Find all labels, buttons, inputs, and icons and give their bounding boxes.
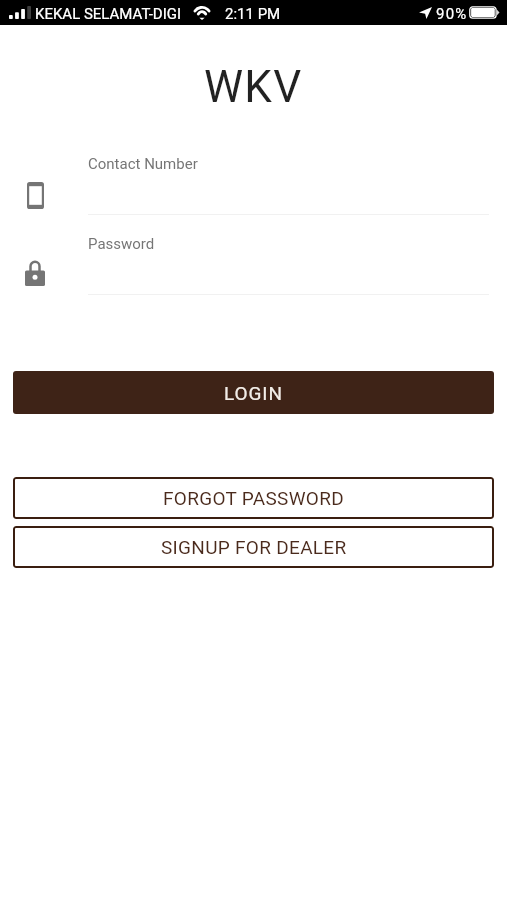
other: Password	[25, 259, 45, 287]
button[interactable]: Contact Number	[88, 141, 489, 215]
staticText: Password	[88, 235, 155, 253]
button[interactable]: LOGIN	[13, 371, 494, 414]
staticText: FORGOT PASSWORD	[163, 487, 344, 509]
button[interactable]: Password	[88, 221, 489, 295]
button[interactable]: FORGOT PASSWORD	[13, 477, 494, 519]
staticText: 90%	[436, 5, 468, 23]
button[interactable]: SIGNUP FOR DEALER	[13, 526, 494, 568]
staticText: LOGIN	[224, 382, 283, 404]
staticText: WKV	[204, 61, 303, 113]
staticText: 2:11 PM	[225, 5, 281, 23]
staticText: Contact Number	[88, 155, 198, 173]
staticText: SIGNUP FOR DEALER	[161, 536, 347, 558]
other: Contact number	[25, 181, 45, 209]
staticText: KEKAL SELAMAT-DIGI	[35, 5, 182, 23]
